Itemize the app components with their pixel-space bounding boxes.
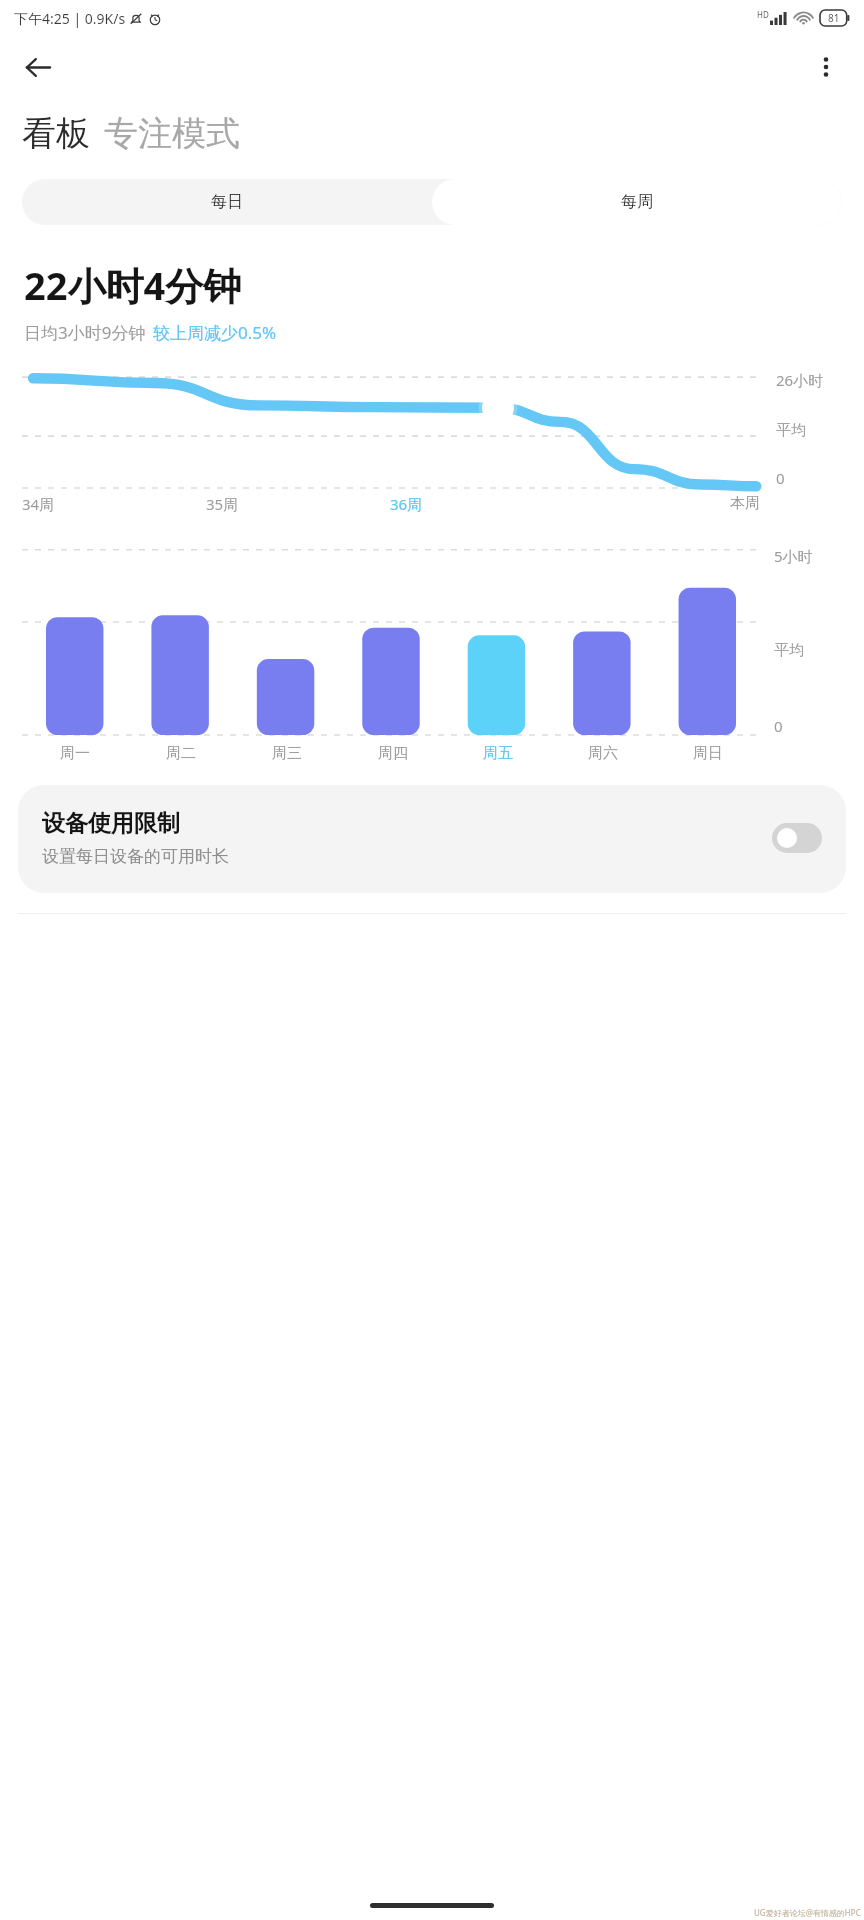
staticText: 22小时4分钟	[24, 259, 242, 311]
button[interactable]: 34周	[22, 494, 55, 514]
button[interactable]: 专注模式	[104, 112, 240, 155]
button[interactable]: 35周	[206, 494, 239, 514]
staticText: 每周	[621, 192, 653, 212]
staticText: HD	[757, 9, 769, 20]
staticText: 平均	[776, 421, 806, 440]
staticText: 周二	[166, 744, 196, 763]
staticText: 平均	[774, 641, 804, 660]
staticText: 周六	[588, 744, 618, 763]
staticText: 26小时	[776, 370, 824, 390]
staticText: 5小时	[774, 546, 813, 566]
button[interactable]: 每日	[22, 179, 432, 225]
button[interactable]: Back	[12, 41, 64, 93]
staticText: 0	[776, 468, 785, 488]
button[interactable]: 本周	[730, 494, 760, 513]
staticText: 周四	[378, 744, 408, 763]
staticText: 周日	[693, 744, 723, 763]
button[interactable]: 周四	[340, 744, 445, 763]
staticText: 日均3小时9分钟	[24, 321, 146, 344]
staticText: 81	[828, 11, 840, 25]
staticText: 0	[774, 716, 783, 736]
button[interactable]: 设备使用限制	[18, 785, 846, 893]
button[interactable]: 周日	[655, 744, 760, 763]
staticText: 周一	[60, 744, 90, 763]
button[interactable]: 36周	[390, 494, 423, 514]
button[interactable]: 周一	[22, 744, 128, 763]
staticText: UG爱好者论坛@有情感的HPC	[754, 1907, 861, 1918]
staticText: 较上周减少0.5%	[153, 321, 277, 344]
staticText: 设置每日设备的可用时长	[42, 846, 229, 867]
button[interactable]: Device usage limit toggle	[772, 823, 822, 853]
staticText: 每日	[211, 192, 243, 212]
button[interactable]: 周五	[445, 744, 550, 763]
button[interactable]: 周二	[128, 744, 234, 763]
button[interactable]: 周六	[550, 744, 655, 763]
button[interactable]: More options	[802, 43, 850, 91]
button[interactable]: 看板	[22, 112, 90, 155]
staticText: 周三	[272, 744, 302, 763]
button[interactable]: 周三	[234, 744, 340, 763]
staticText: 下午4:25 | 0.9K/s	[14, 9, 126, 28]
button[interactable]: 每周	[432, 179, 842, 225]
staticText: 周五	[483, 744, 513, 763]
staticText: 设备使用限制	[42, 809, 180, 838]
